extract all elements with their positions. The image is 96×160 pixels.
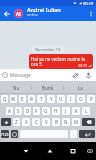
button[interactable]: Bună <box>32 81 64 94</box>
button[interactable]: A <box>6 107 13 115</box>
staticText: O <box>79 96 83 102</box>
button[interactable]: M <box>72 118 80 126</box>
staticText: Bună <box>42 85 54 91</box>
staticText: Q <box>3 96 7 102</box>
button[interactable]: Q <box>1 95 8 103</box>
staticText: D <box>26 108 30 114</box>
button[interactable]: N <box>62 118 70 126</box>
button[interactable]: U <box>57 95 65 103</box>
staticText: Hai sa ne vedem maine la ora 5 <box>31 56 86 67</box>
button[interactable]: Back <box>0 6 14 21</box>
button[interactable]: Y <box>47 95 55 103</box>
button[interactable]: S <box>15 107 22 115</box>
staticText: AI <box>16 11 21 17</box>
staticText: online <box>27 12 39 17</box>
staticText: W <box>11 96 16 102</box>
button[interactable]: T <box>37 95 45 103</box>
button[interactable]: Emoji <box>0 69 10 81</box>
staticText: E <box>21 96 24 102</box>
button[interactable]: Nu <box>0 81 32 94</box>
button[interactable]: D <box>24 107 31 115</box>
staticText: U <box>59 96 63 102</box>
button[interactable]: backspace <box>82 118 95 126</box>
staticText: P <box>90 96 93 102</box>
staticText: T <box>40 96 43 102</box>
button[interactable]: shift <box>1 118 11 126</box>
button[interactable]: Hai sa ne vedem maine la ora 5 <box>29 54 93 69</box>
button[interactable]: O <box>77 95 85 103</box>
button[interactable]: Home <box>44 145 56 157</box>
staticText: C <box>35 119 38 125</box>
button[interactable]: R <box>28 95 35 103</box>
button[interactable]: W <box>10 95 17 103</box>
staticText: Nu <box>13 85 20 91</box>
button[interactable]: enter <box>79 130 95 138</box>
button[interactable]: F <box>33 107 40 115</box>
button[interactable]: V <box>42 118 50 126</box>
staticText: G <box>44 108 48 114</box>
staticText: V <box>45 119 48 125</box>
button[interactable]: G <box>42 107 50 115</box>
staticText: L <box>85 108 88 114</box>
button[interactable]: Attach <box>69 69 82 81</box>
button[interactable]: Camera <box>82 69 95 81</box>
button[interactable]: Z <box>13 118 20 126</box>
staticText: Z <box>15 119 18 125</box>
staticText: F <box>35 108 38 114</box>
button[interactable]: C <box>32 118 40 126</box>
staticText: Andrei Iulian <box>27 6 61 13</box>
staticText: La <box>78 85 83 91</box>
staticText: M <box>74 119 79 125</box>
staticText: 00:19 <box>83 1 94 6</box>
staticText: X <box>25 119 28 125</box>
button[interactable]: L <box>82 107 90 115</box>
button[interactable]: X <box>22 118 30 126</box>
staticText: 00:19 <box>78 63 87 68</box>
staticText: Y <box>50 96 53 102</box>
staticText: N <box>64 119 68 125</box>
staticText: ?123 <box>1 132 9 137</box>
button[interactable]: E <box>19 95 26 103</box>
button[interactable]: K <box>72 107 80 115</box>
staticText: H <box>54 108 58 114</box>
button[interactable]: ?123 <box>1 130 9 138</box>
button[interactable]: . <box>70 130 77 138</box>
button[interactable]: I <box>67 95 75 103</box>
staticText: . <box>73 131 75 137</box>
button[interactable]: J <box>62 107 70 115</box>
staticText: November 14 <box>35 47 61 52</box>
staticText: B <box>55 119 58 125</box>
staticText: A <box>8 108 11 114</box>
staticText: R <box>30 96 33 102</box>
button[interactable]: Switch keyboard <box>85 146 95 156</box>
button[interactable]: More options <box>86 6 96 21</box>
button[interactable]: La <box>64 81 96 94</box>
button[interactable]: Recents <box>67 145 79 157</box>
button[interactable]: H <box>52 107 60 115</box>
button[interactable]: Back <box>20 145 32 157</box>
staticText: Message <box>10 72 69 79</box>
button[interactable]: B <box>52 118 60 126</box>
button[interactable]: P <box>87 95 95 103</box>
staticText: I <box>70 96 72 102</box>
staticText: S <box>17 108 20 114</box>
staticText: J <box>65 108 67 114</box>
staticText: K <box>75 108 78 114</box>
button[interactable]: emoji <box>11 130 18 138</box>
